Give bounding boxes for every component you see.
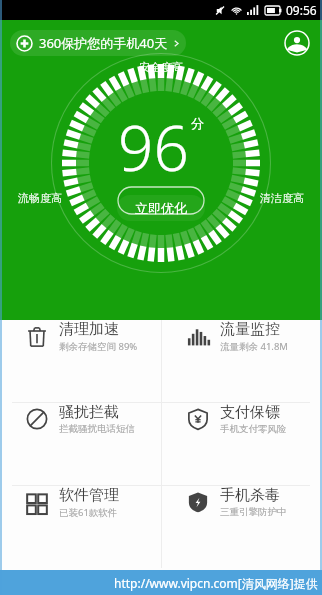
staticText: 09:56 [286, 2, 317, 18]
staticText: 已装61款软件 [59, 506, 118, 519]
staticText: 96 [118, 105, 189, 189]
staticText: 三重引擎防护中 [220, 506, 287, 518]
button[interactable]: 立即优化 [117, 195, 205, 221]
staticText: 流量监控 [220, 320, 280, 339]
staticText: 清洁度高 [260, 191, 304, 205]
staticText: 流畅度高 [18, 191, 62, 205]
button[interactable]: 清理加速 [0, 320, 161, 353]
staticText: 安全度高 [139, 60, 183, 74]
staticText: http://www.vipcn.com[清风网络]提供 [114, 575, 318, 591]
button[interactable]: Account [282, 28, 312, 58]
staticText: 立即优化 [135, 200, 187, 216]
button[interactable]: 支付保镖 [161, 403, 322, 435]
staticText: 流量剩余 41.8M [220, 340, 288, 353]
button[interactable]: 手机杀毒 [161, 486, 322, 518]
staticText: 手机杀毒 [220, 486, 280, 505]
button[interactable]: 软件管理 [0, 486, 161, 519]
staticText: 360保护您的手机40天 [39, 34, 168, 52]
staticText: 手机支付零风险 [220, 423, 287, 435]
button[interactable]: 360保护您的手机40天 [10, 30, 186, 56]
staticText: 清理加速 [59, 320, 119, 339]
staticText: 拦截骚扰电话短信 [59, 423, 135, 435]
staticText: 支付保镖 [220, 403, 280, 422]
button[interactable]: 骚扰拦截 [0, 403, 161, 435]
staticText: 分 [191, 115, 204, 131]
staticText: 剩余存储空间 89% [59, 340, 138, 353]
button[interactable]: 流量监控 [161, 320, 322, 353]
staticText: 骚扰拦截 [59, 403, 119, 422]
staticText: 软件管理 [59, 486, 119, 505]
